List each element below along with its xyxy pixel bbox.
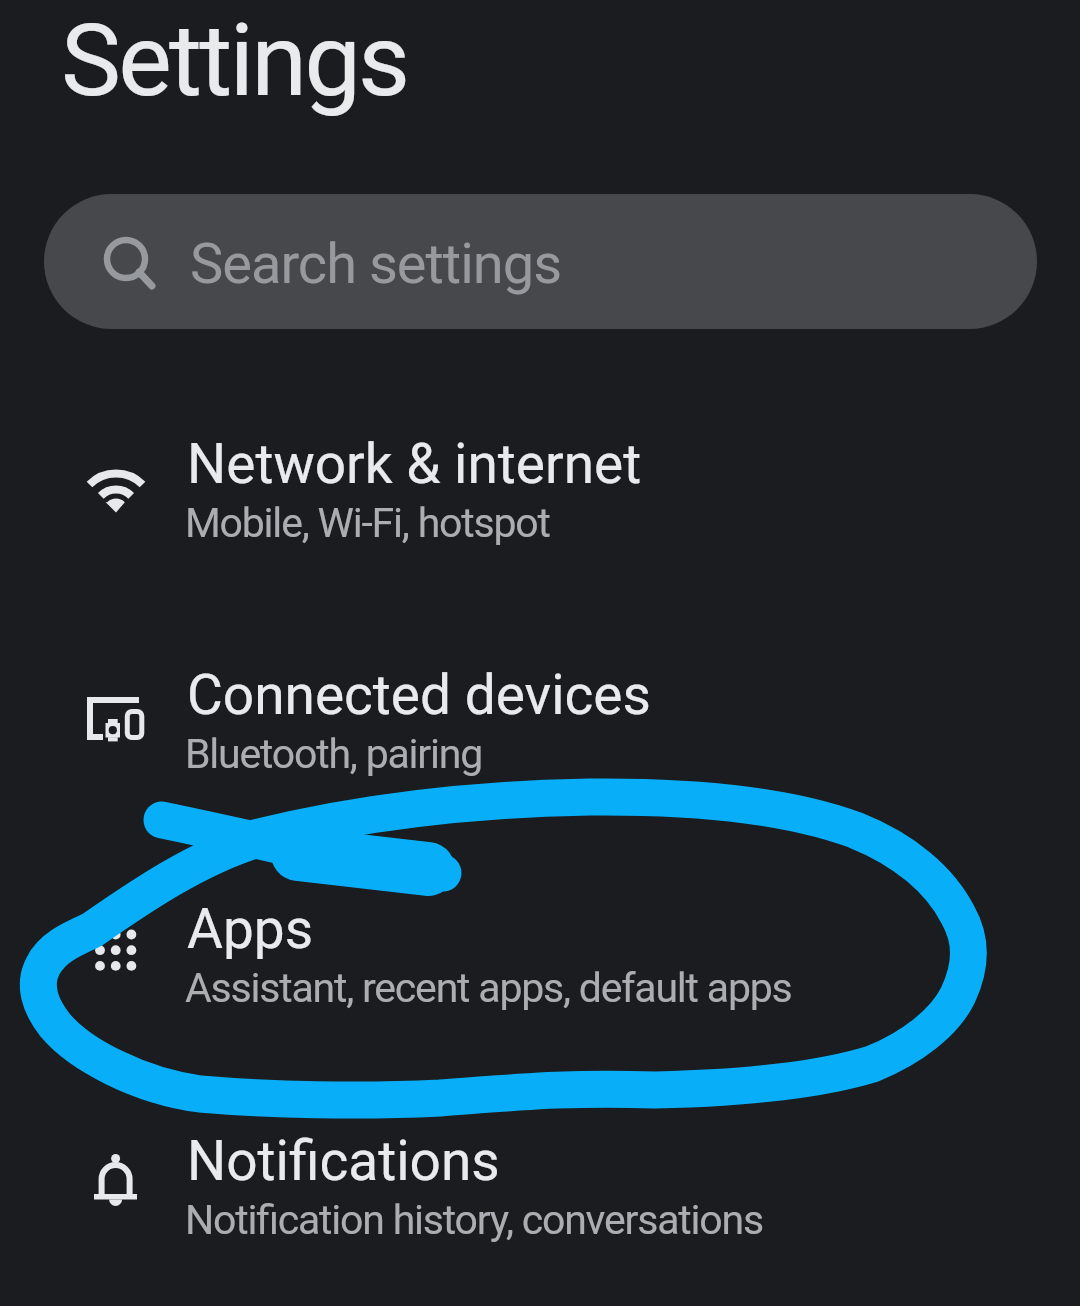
- button[interactable]: Network & internet: [0, 371, 1080, 602]
- staticText: Network & internet: [187, 432, 642, 496]
- staticText: Bluetooth, pairing: [185, 730, 483, 778]
- staticText: Apps: [187, 897, 314, 961]
- button[interactable]: Search settings: [44, 194, 1037, 329]
- staticText: Mobile, Wi-Fi, hotspot: [185, 499, 550, 547]
- button[interactable]: Connected devices: [0, 602, 1080, 833]
- button[interactable]: Notifications: [0, 1068, 1080, 1299]
- staticText: Search settings: [190, 231, 562, 297]
- button[interactable]: Apps: [0, 836, 1080, 1067]
- staticText: Assistant, recent apps, default apps: [185, 964, 792, 1012]
- staticText: Notifications: [187, 1129, 500, 1193]
- staticText: Connected devices: [187, 663, 651, 727]
- staticText: Settings: [61, 1, 408, 119]
- staticText: Notification history, conversations: [185, 1196, 763, 1244]
